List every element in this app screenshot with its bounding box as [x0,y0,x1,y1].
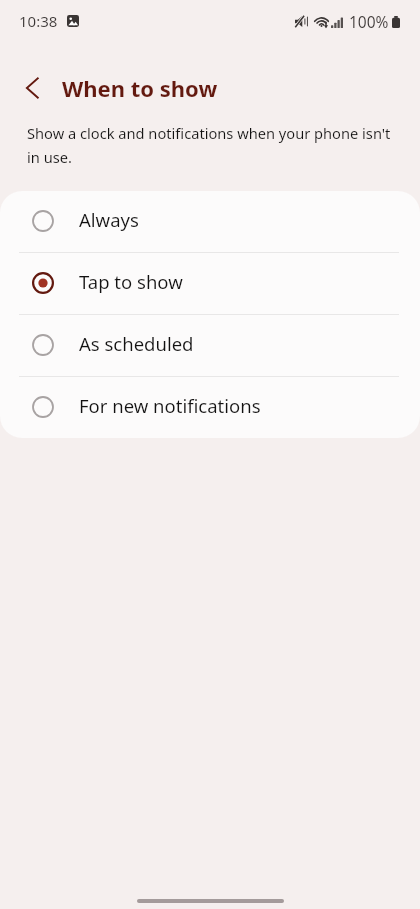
staticText: Always [79,207,139,232]
button[interactable]: Navigate up [0,64,62,112]
button[interactable]: For new notifications [0,377,420,438]
staticText: Show a clock and notifications when your… [27,123,395,168]
staticText: As scheduled [79,331,194,356]
staticText: 100% [349,11,389,32]
staticText: When to show [62,73,218,103]
staticText: 10:38 [19,11,58,31]
button[interactable]: Tap to show [0,253,420,314]
staticText: For new notifications [79,393,261,418]
staticText: Tap to show [79,269,183,294]
button[interactable]: Always [0,191,420,252]
button[interactable]: As scheduled [0,315,420,376]
